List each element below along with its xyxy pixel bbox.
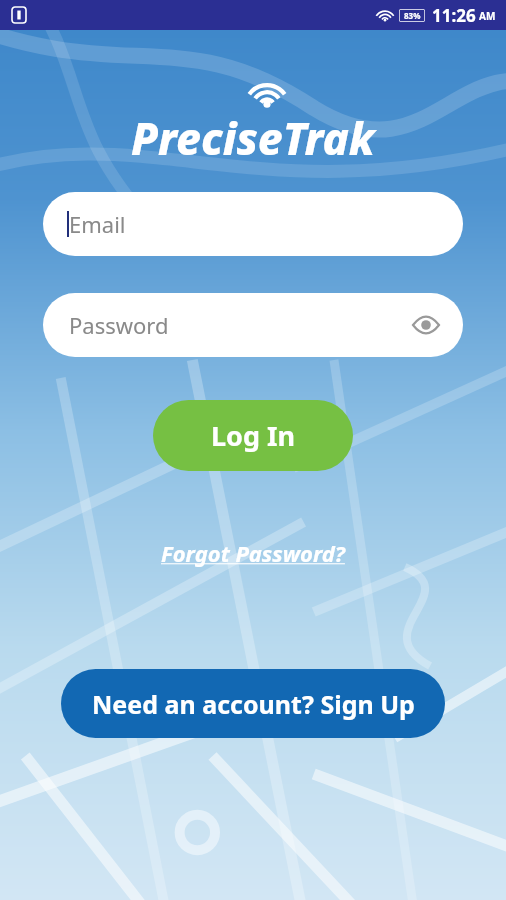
staticText: Email: [69, 209, 126, 239]
button[interactable]: Need an account? Sign Up: [61, 669, 445, 738]
staticText: Password: [69, 310, 169, 340]
staticText: PreciseTrak: [131, 108, 375, 168]
staticText: 83%: [404, 10, 421, 21]
staticText: Forgot Password?: [161, 538, 345, 568]
button[interactable]: Password: [43, 293, 463, 357]
button[interactable]: Show password: [409, 308, 443, 342]
staticText: Need an account? Sign Up: [92, 687, 415, 721]
button[interactable]: Log In: [153, 400, 353, 471]
staticText: 11:26: [432, 4, 476, 27]
staticText: Log In: [211, 417, 296, 454]
button[interactable]: Email: [43, 192, 463, 256]
button[interactable]: Forgot Password?: [153, 534, 353, 572]
staticText: AM: [479, 9, 496, 23]
